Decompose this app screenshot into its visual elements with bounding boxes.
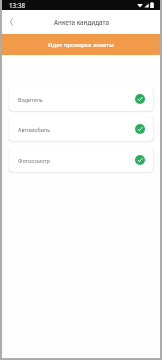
staticText: Фотоосмотр bbox=[18, 157, 135, 164]
staticText: Водитель bbox=[18, 96, 135, 103]
button[interactable]: Фотоосмотр bbox=[9, 148, 153, 172]
staticText: Идет проверка анкеты bbox=[48, 41, 114, 49]
button[interactable]: Автомобиль bbox=[9, 117, 153, 141]
staticText: Анкета кандидата bbox=[54, 18, 109, 26]
staticText: 13:38 bbox=[9, 1, 26, 10]
button[interactable]: Водитель bbox=[9, 87, 153, 111]
button[interactable]: Назад bbox=[3, 14, 19, 30]
staticText: Автомобиль bbox=[18, 126, 135, 133]
